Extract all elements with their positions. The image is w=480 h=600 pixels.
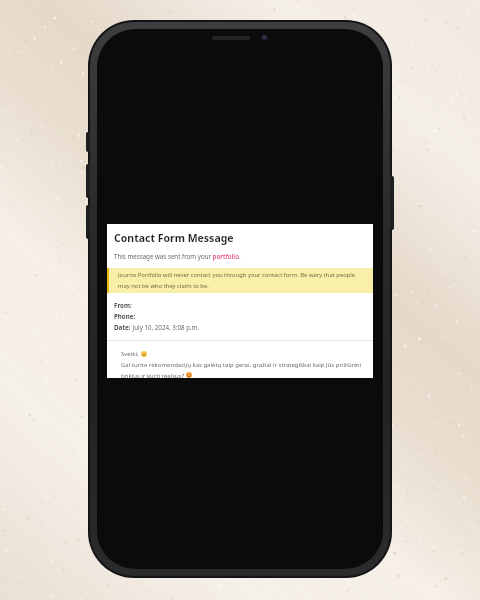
staticText: From:: [114, 301, 132, 309]
staticText: Date:: [114, 323, 131, 331]
staticText: may not be who they claim to be.: [118, 282, 209, 290]
staticText: Sveiki,: [121, 350, 139, 358]
other: emoji: [186, 372, 192, 378]
button[interactable]: This message was sent from your portfoli…: [114, 252, 241, 260]
staticText: tinklus ir kurti reelsus?: [121, 372, 185, 378]
staticText: Phone:: [114, 312, 136, 320]
staticText: Contact Form Message: [114, 231, 234, 245]
other: emoji: [141, 351, 147, 357]
staticText: Gal turite rekomendacijų kas galėtų taip…: [121, 361, 367, 369]
staticText: July 10, 2024, 3:08 p.m.: [131, 323, 200, 331]
staticText: Journo Portfolio will never contact you …: [118, 271, 356, 279]
